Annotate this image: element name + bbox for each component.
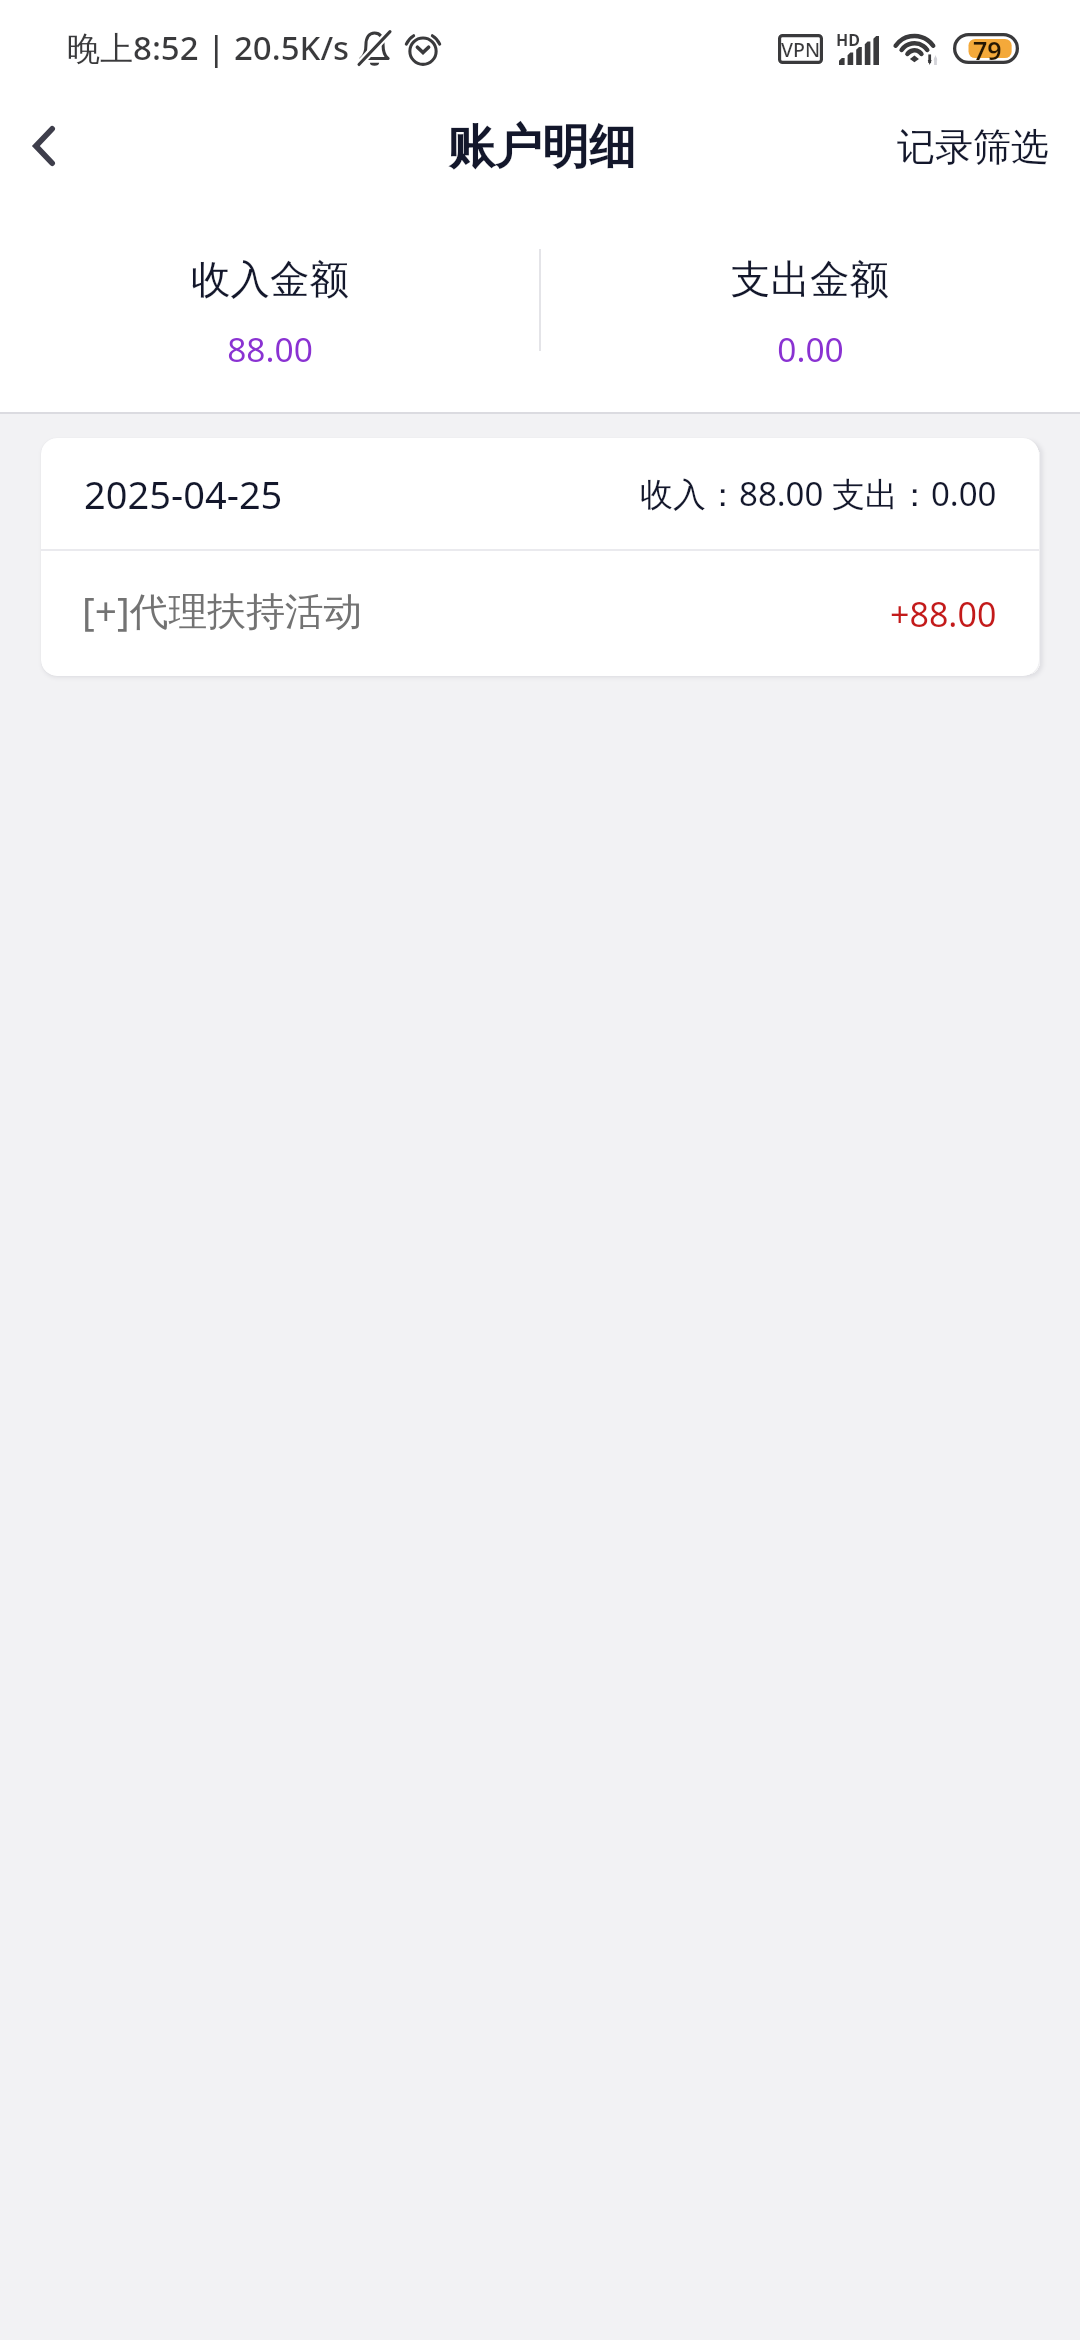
staticText: 收入：88.00 支出：0.00: [640, 471, 997, 516]
button[interactable]: [+]代理扶持活动: [41, 551, 1039, 676]
staticText: +88.00: [890, 591, 997, 637]
staticText: HD: [836, 29, 860, 51]
staticText: 2025-04-25: [84, 468, 283, 520]
staticText: 晚上8:52 | 20.5K/s: [67, 25, 350, 70]
staticText: 支出金额: [731, 255, 889, 305]
button[interactable]: 2025-04-25: [41, 438, 1039, 549]
button[interactable]: Back: [0, 96, 88, 196]
staticText: 88.00: [227, 326, 313, 372]
staticText: 记录筛选: [897, 123, 1049, 171]
staticText: [+]代理扶持活动: [82, 584, 363, 637]
staticText: 收入金额: [191, 255, 349, 305]
staticText: 0.00: [777, 326, 844, 372]
staticText: 79: [973, 33, 1002, 64]
staticText: VPN: [781, 36, 821, 63]
button[interactable]: 记录筛选: [864, 101, 1080, 193]
staticText: 账户明细: [448, 118, 636, 177]
